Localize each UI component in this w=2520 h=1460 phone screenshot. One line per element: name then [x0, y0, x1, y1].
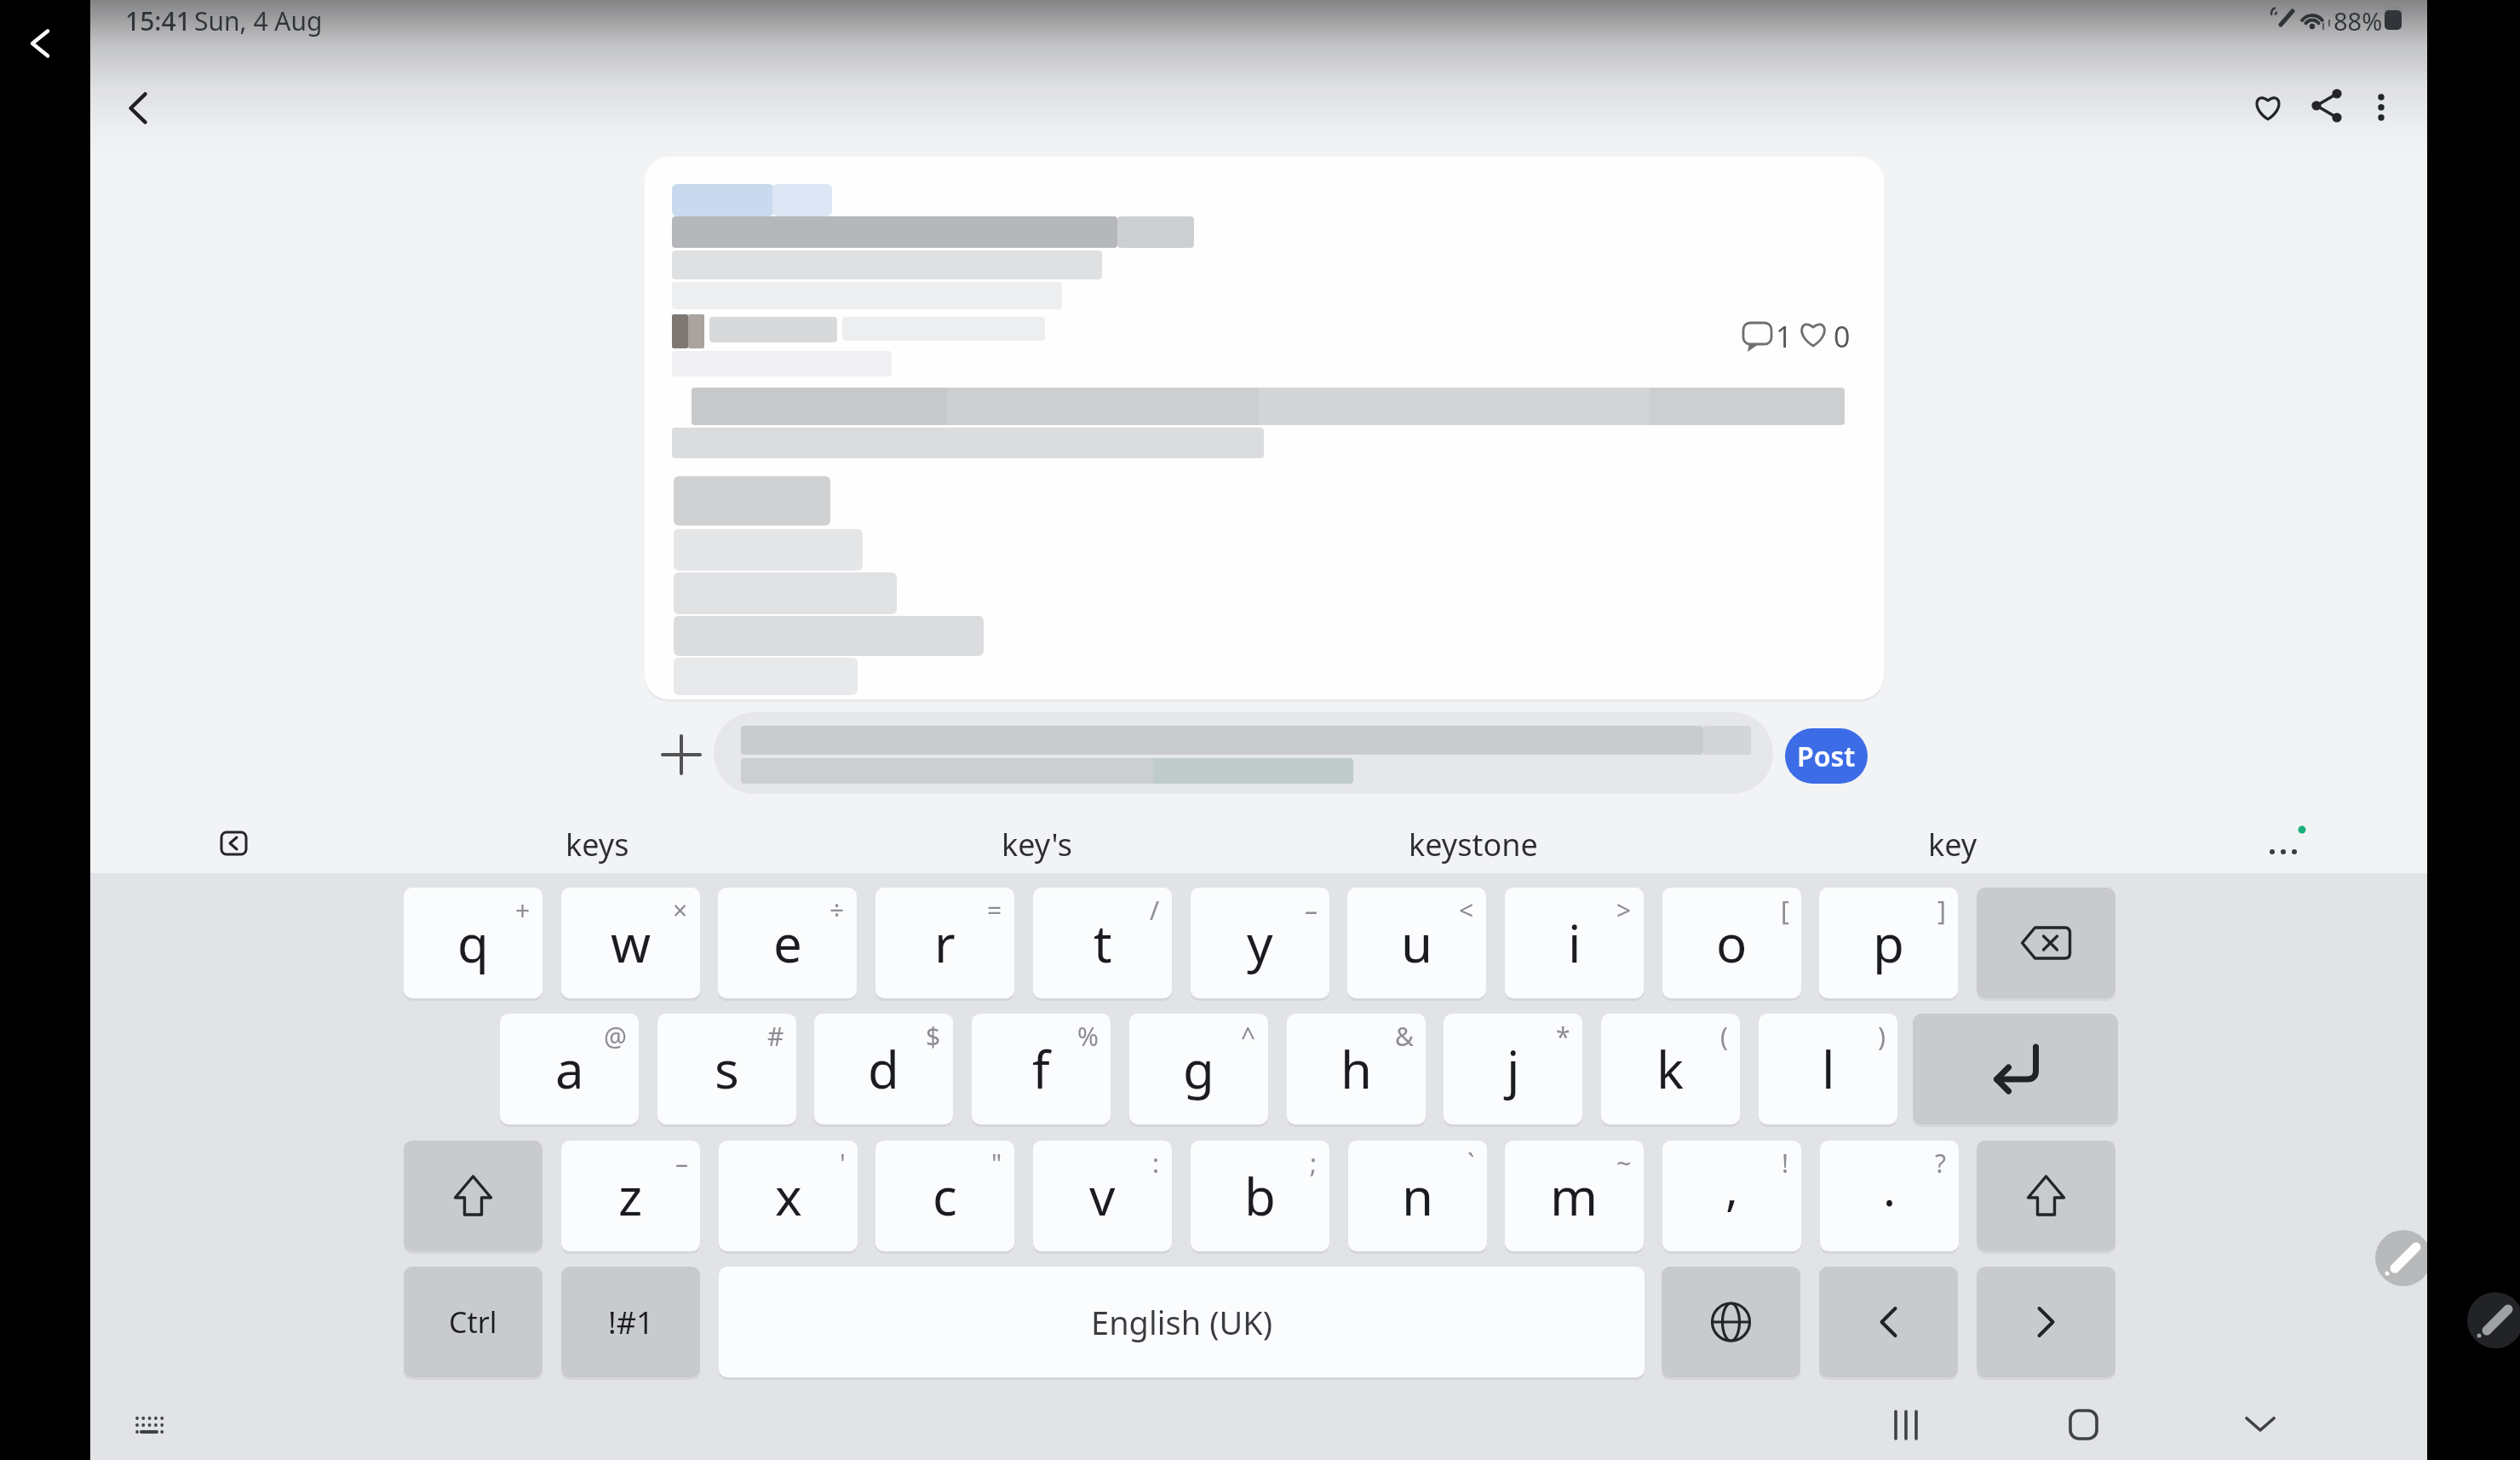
staticText: $ — [926, 1019, 941, 1054]
button[interactable] — [124, 1404, 174, 1453]
button[interactable]: . — [1820, 1141, 1959, 1251]
staticText: – — [675, 1146, 688, 1181]
staticText: x — [775, 1161, 802, 1231]
button[interactable] — [107, 80, 162, 135]
staticText: i — [1568, 908, 1581, 978]
button[interactable]: u — [1347, 888, 1486, 998]
button[interactable]: g — [1129, 1014, 1268, 1124]
staticText: key — [1928, 824, 1978, 865]
button[interactable]: y — [1191, 888, 1329, 998]
staticText: : — [1152, 1146, 1160, 1181]
button[interactable] — [211, 823, 255, 867]
staticText: 1 — [1776, 317, 1793, 356]
button[interactable] — [404, 1141, 542, 1251]
button[interactable]: Ctrl — [404, 1267, 542, 1377]
button[interactable]: k — [1601, 1014, 1740, 1124]
staticText: key's — [1002, 824, 1072, 865]
button[interactable] — [2359, 80, 2403, 124]
staticText: f — [1032, 1034, 1050, 1104]
staticText: ( — [1720, 1019, 1728, 1054]
button[interactable]: key's — [926, 812, 1147, 877]
staticText: – — [1305, 893, 1317, 928]
staticText: & — [1395, 1019, 1414, 1054]
staticText: ^ — [1241, 1019, 1256, 1054]
staticText: t — [1094, 908, 1112, 978]
staticText: j — [1507, 1034, 1520, 1104]
button[interactable]: r — [875, 888, 1014, 998]
button[interactable] — [2242, 82, 2293, 133]
staticText: q — [457, 908, 489, 978]
staticText: ' — [840, 1146, 846, 1181]
button[interactable] — [1977, 1141, 2115, 1251]
button[interactable] — [2302, 80, 2353, 131]
button[interactable]: h — [1287, 1014, 1426, 1124]
button[interactable]: f — [972, 1014, 1111, 1124]
button[interactable]: q — [404, 888, 542, 998]
button[interactable]: v — [1033, 1141, 1172, 1251]
staticText: 0 — [1834, 317, 1851, 356]
button[interactable] — [13, 17, 66, 70]
button[interactable]: o — [1662, 888, 1801, 998]
button[interactable]: keystone — [1363, 812, 1584, 877]
button[interactable]: x — [719, 1141, 858, 1251]
button[interactable]: c — [875, 1141, 1014, 1251]
button[interactable]: z — [561, 1141, 700, 1251]
staticText: @ — [604, 1019, 627, 1054]
staticText: n — [1402, 1161, 1434, 1231]
button[interactable] — [1977, 1267, 2115, 1377]
button[interactable]: j — [1444, 1014, 1582, 1124]
button[interactable] — [2375, 1230, 2431, 1286]
button[interactable]: English (UK) — [719, 1267, 1645, 1377]
button[interactable]: i — [1505, 888, 1644, 998]
staticText: h — [1340, 1034, 1373, 1104]
button[interactable]: a — [500, 1014, 639, 1124]
staticText: ~ — [1616, 1146, 1632, 1181]
staticText: + — [515, 893, 531, 928]
staticText: a — [555, 1034, 584, 1104]
button[interactable] — [1877, 1397, 1935, 1455]
button[interactable]: n — [1348, 1141, 1487, 1251]
button[interactable] — [1819, 1267, 1958, 1377]
staticText: * — [1556, 1019, 1570, 1054]
button[interactable]: Post — [1785, 728, 1868, 784]
button[interactable] — [2231, 1397, 2289, 1455]
button[interactable]: t — [1033, 888, 1172, 998]
staticText: v — [1089, 1161, 1116, 1231]
button[interactable]: l — [1759, 1014, 1897, 1124]
staticText: y — [1247, 908, 1273, 978]
button[interactable] — [2467, 1292, 2520, 1348]
staticText: 88% — [2333, 4, 2383, 37]
button[interactable]: e — [718, 888, 857, 998]
staticText: keys — [565, 824, 629, 865]
button[interactable] — [1662, 1267, 1800, 1377]
button[interactable] — [714, 712, 1773, 794]
staticText: keystone — [1409, 824, 1538, 865]
button[interactable]: d — [814, 1014, 953, 1124]
button[interactable] — [2255, 816, 2315, 876]
staticText: = — [987, 893, 1002, 928]
button[interactable]: b — [1191, 1141, 1329, 1251]
button[interactable]: s — [657, 1014, 796, 1124]
staticText: e — [773, 908, 802, 978]
button[interactable] — [656, 729, 707, 780]
button[interactable]: key — [1842, 812, 2064, 877]
button[interactable]: m — [1505, 1141, 1644, 1251]
staticText: % — [1077, 1019, 1099, 1054]
staticText: d — [868, 1034, 899, 1104]
staticText: / — [1150, 893, 1160, 928]
button[interactable]: w — [561, 888, 700, 998]
button[interactable]: !#1 — [561, 1267, 700, 1377]
button[interactable]: , — [1662, 1141, 1801, 1251]
staticText: ` — [1467, 1146, 1475, 1181]
button[interactable] — [1913, 1014, 2118, 1124]
staticText: ] — [1937, 893, 1946, 928]
staticText: # — [767, 1019, 784, 1054]
staticText: Sun, 4 Aug — [194, 3, 323, 38]
button[interactable] — [2054, 1397, 2112, 1455]
staticText: z — [618, 1161, 643, 1231]
button[interactable]: p — [1819, 888, 1958, 998]
staticText: c — [933, 1161, 957, 1231]
button[interactable] — [1977, 888, 2115, 998]
staticText: p — [1873, 908, 1904, 978]
button[interactable]: keys — [486, 812, 708, 877]
